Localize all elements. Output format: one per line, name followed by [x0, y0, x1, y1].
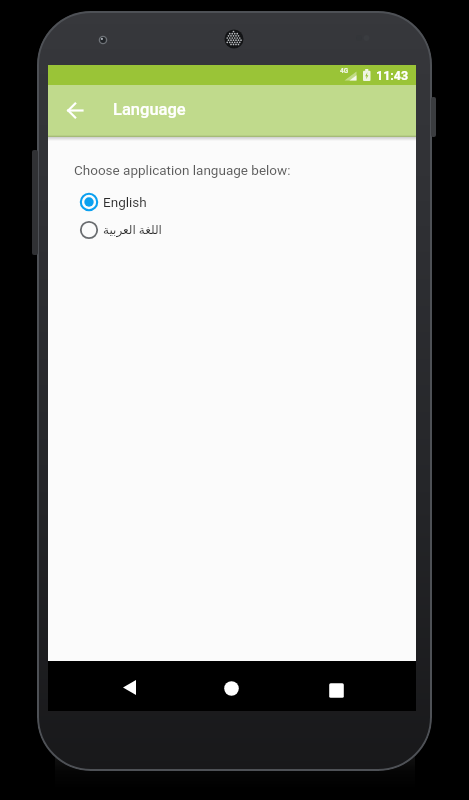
- staticText: Language: [113, 100, 186, 119]
- staticText: اللغة العربية: [103, 223, 162, 237]
- staticText: 4G: [340, 67, 349, 75]
- button[interactable]: اللغة العربية: [80, 218, 162, 242]
- staticText: Choose application language below:: [74, 162, 291, 178]
- button[interactable]: English: [80, 190, 147, 214]
- button[interactable]: [321, 675, 351, 705]
- button[interactable]: [216, 673, 246, 703]
- staticText: 11:43: [376, 68, 409, 83]
- button[interactable]: [61, 96, 89, 124]
- button[interactable]: [114, 672, 144, 702]
- staticText: English: [103, 194, 147, 210]
